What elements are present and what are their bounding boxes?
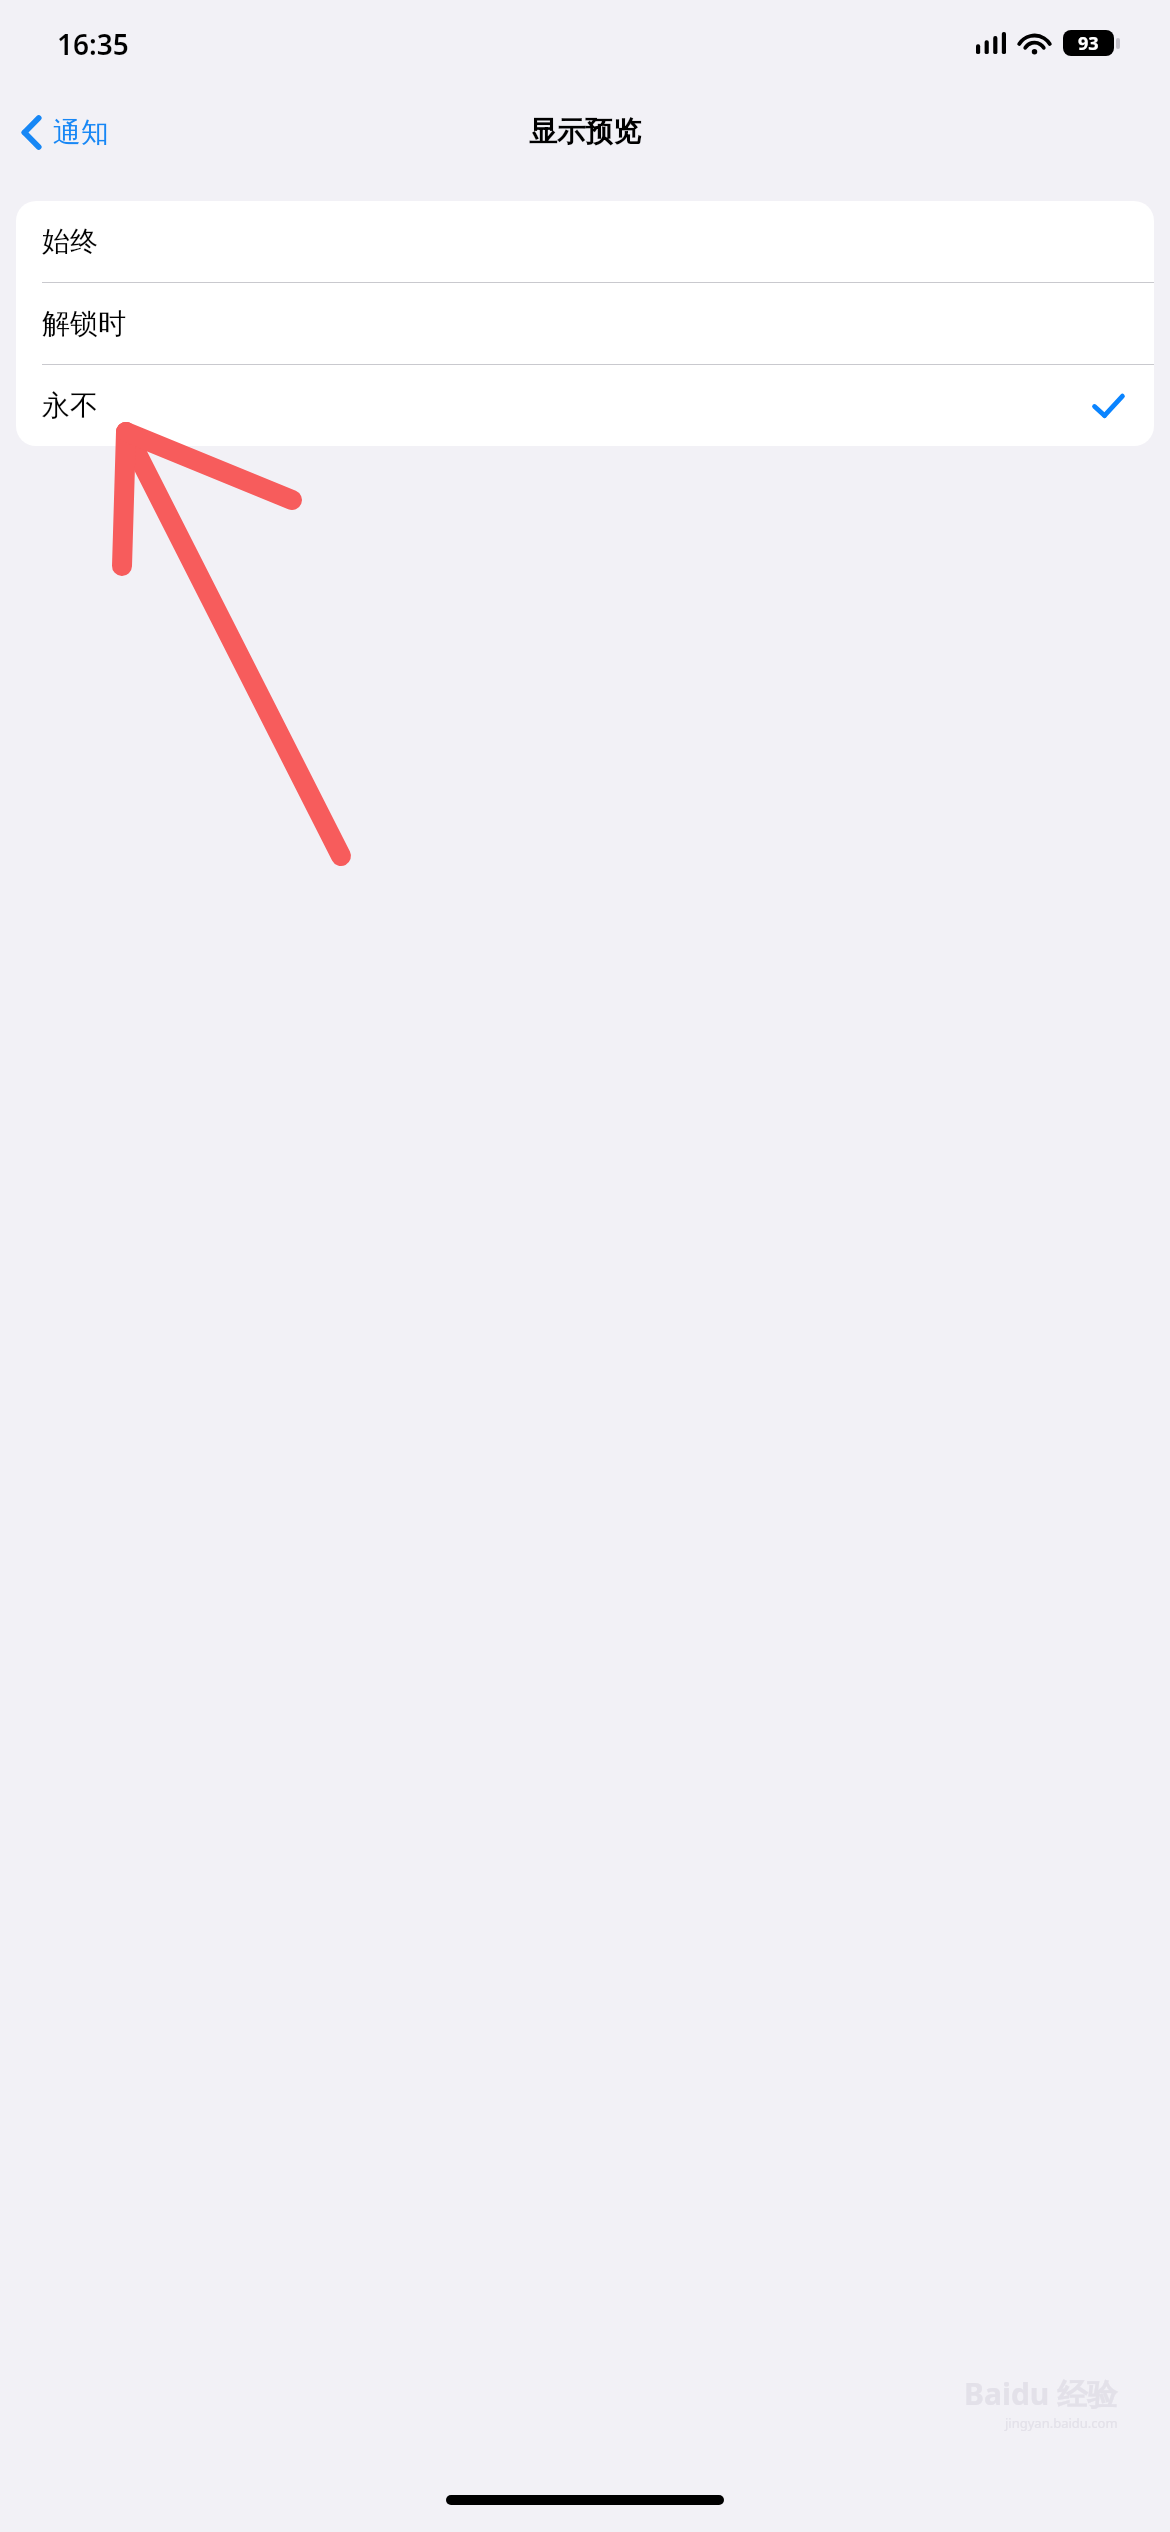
staticText: 始终 — [42, 224, 98, 259]
staticText: 永不 — [42, 388, 98, 423]
button[interactable]: 永不 — [16, 365, 1154, 446]
staticText: Baidu 经验 — [964, 2373, 1118, 2414]
button[interactable]: 通知 — [12, 109, 121, 156]
staticText: 解锁时 — [42, 306, 126, 341]
button[interactable]: 始终 — [16, 201, 1154, 282]
other: Selected — [1093, 394, 1124, 418]
staticText: 通知 — [53, 115, 109, 150]
button[interactable]: 解锁时 — [16, 283, 1154, 364]
staticText: 93 — [1078, 31, 1099, 56]
staticText: jingyan.baidu.com — [1005, 2414, 1118, 2432]
staticText: 16:35 — [57, 25, 129, 63]
staticText: 显示预览 — [529, 114, 641, 149]
